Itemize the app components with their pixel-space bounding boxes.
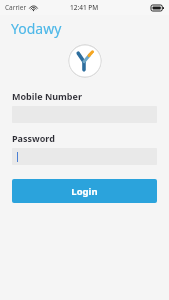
staticText: Password	[12, 132, 55, 144]
staticText: Yodawy	[11, 19, 62, 38]
staticText: Login	[71, 185, 98, 198]
button[interactable]: Password field	[12, 148, 157, 165]
staticText: 12:41 PM	[70, 3, 99, 12]
staticText: Mobile Number	[12, 90, 82, 102]
button[interactable]: Login	[12, 179, 157, 203]
staticText: Carrier	[5, 3, 27, 12]
